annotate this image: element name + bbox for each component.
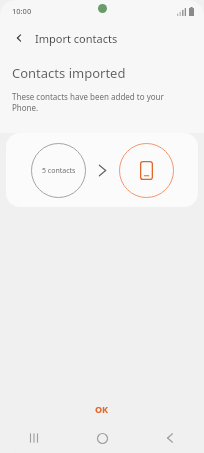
staticText: Contacts imported bbox=[12, 64, 126, 82]
button[interactable]: OK bbox=[77, 398, 127, 420]
button[interactable]: Recent apps bbox=[0, 423, 68, 453]
button[interactable]: Back bbox=[136, 423, 204, 453]
button[interactable]: Home bbox=[68, 423, 136, 453]
staticText: These contacts have been added to your P… bbox=[12, 91, 164, 113]
button[interactable]: Back bbox=[6, 25, 32, 51]
staticText: 10:00 bbox=[12, 6, 32, 16]
button[interactable]: 5 contacts bbox=[6, 133, 198, 207]
staticText: OK bbox=[95, 403, 109, 415]
staticText: 5 contacts bbox=[42, 166, 76, 176]
staticText: Import contacts bbox=[35, 31, 118, 46]
